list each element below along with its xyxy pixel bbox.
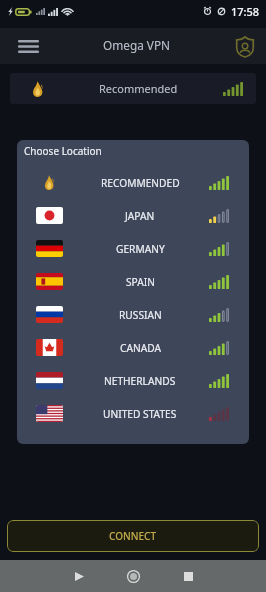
staticText: UNITED STATES — [103, 407, 177, 421]
button[interactable]: RECOMMENDED — [17, 166, 249, 199]
button[interactable]: Home — [117, 560, 149, 592]
button[interactable]: Menu — [17, 35, 39, 57]
button[interactable]: JAPAN — [17, 199, 249, 232]
staticText: SPAIN — [126, 275, 155, 289]
staticText: Recommended — [99, 81, 178, 96]
staticText: RUSSIAN — [119, 308, 162, 322]
staticText: NETHERLANDS — [104, 374, 176, 388]
staticText: JAPAN — [125, 209, 155, 223]
button[interactable]: UNITED STATES — [17, 397, 249, 430]
button[interactable]: RUSSIAN — [17, 298, 249, 331]
button[interactable]: Recents — [172, 560, 204, 592]
staticText: Omega VPN — [103, 37, 171, 53]
button[interactable]: Account — [232, 34, 258, 60]
button[interactable]: CANADA — [17, 331, 249, 364]
button[interactable]: CONNECT — [7, 520, 259, 552]
button[interactable]: Back — [63, 560, 95, 592]
button[interactable]: GERMANY — [17, 232, 249, 265]
button[interactable]: Recommended — [10, 73, 256, 104]
staticText: RECOMMENDED — [101, 176, 180, 190]
staticText: CONNECT — [109, 529, 157, 543]
staticText: CANADA — [120, 341, 161, 355]
button[interactable]: NETHERLANDS — [17, 364, 249, 397]
staticText: GERMANY — [116, 242, 165, 256]
staticText: Choose Location — [24, 144, 102, 158]
button[interactable]: SPAIN — [17, 265, 249, 298]
staticText: 17:58 — [231, 4, 260, 19]
